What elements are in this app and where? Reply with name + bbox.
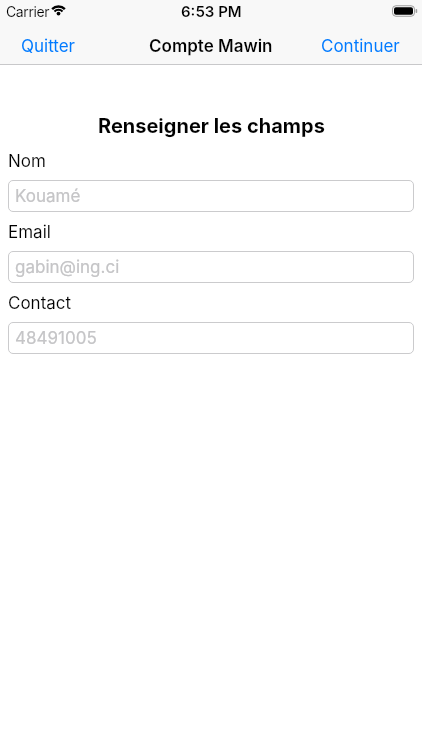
button[interactable]: gabin@ing.ci [8,251,414,283]
staticText: 6:53 PM [181,2,242,20]
staticText: Nom [8,151,46,172]
staticText: Renseigner les champs [98,114,325,138]
staticText: Compte Mawin [149,36,273,57]
staticText: Contact [8,293,72,314]
button[interactable]: 48491005 [8,322,414,354]
button[interactable]: Kouamé [8,180,414,212]
button[interactable]: Continuer [321,36,422,57]
staticText: Continuer [321,36,400,57]
staticText: Email [8,222,51,243]
staticText: gabin@ing.ci [15,257,120,278]
staticText: 48491005 [15,328,97,349]
staticText: Carrier [6,3,50,20]
staticText: Quitter [21,36,76,57]
button[interactable]: Quitter [0,36,76,57]
staticText: Kouamé [15,186,81,207]
